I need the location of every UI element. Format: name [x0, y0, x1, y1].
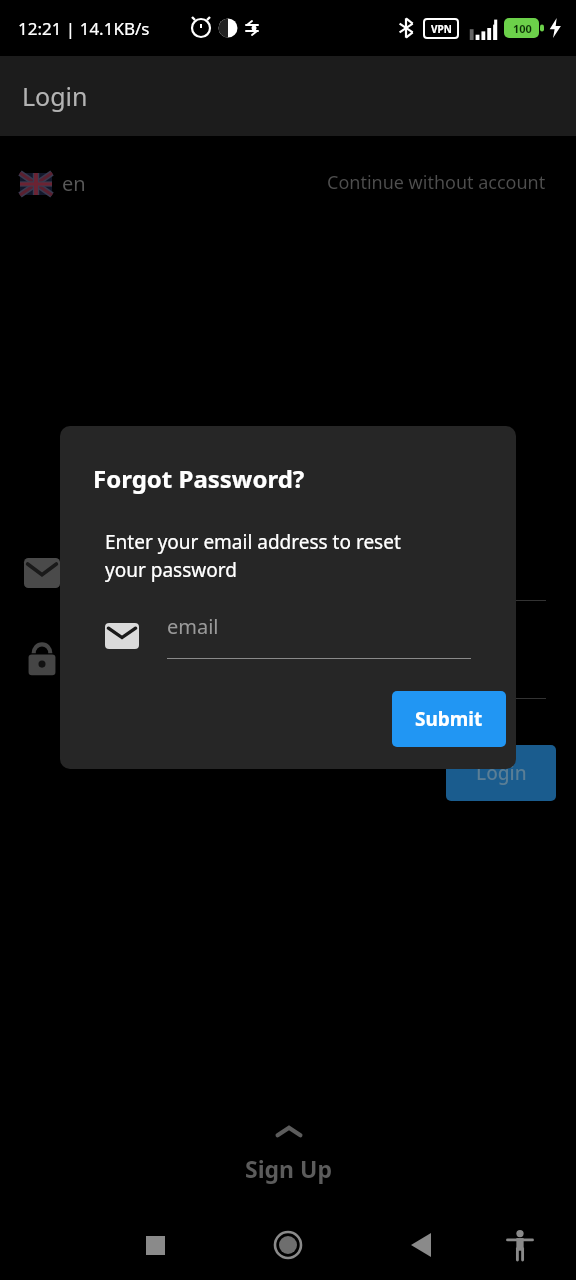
- button[interactable]: Recents: [131, 1221, 179, 1269]
- staticText: 100: [513, 21, 532, 36]
- button[interactable]: Continue without account: [327, 170, 546, 195]
- button[interactable]: Accessibility: [496, 1221, 544, 1269]
- staticText: VPN: [431, 22, 452, 36]
- button[interactable]: Back: [397, 1221, 445, 1269]
- staticText: Login: [476, 760, 527, 786]
- staticText: Sign Up: [245, 1153, 332, 1184]
- staticText: Login: [22, 79, 88, 113]
- button[interactable]: Sign Up: [245, 1123, 332, 1184]
- staticText: 12:21 | 14.1KB/s: [18, 17, 150, 40]
- staticText: en: [62, 170, 86, 197]
- button[interactable]: Login: [446, 745, 556, 801]
- staticText: Enter your email address to reset your p…: [105, 529, 401, 583]
- button[interactable]: Submit: [392, 691, 506, 747]
- button[interactable]: Home: [262, 1219, 314, 1271]
- staticText: Forgot Password?: [93, 462, 305, 495]
- button[interactable]: en: [20, 170, 86, 197]
- staticText: Continue without account: [327, 170, 546, 195]
- staticText: email: [167, 613, 219, 640]
- staticText: Submit: [415, 706, 483, 732]
